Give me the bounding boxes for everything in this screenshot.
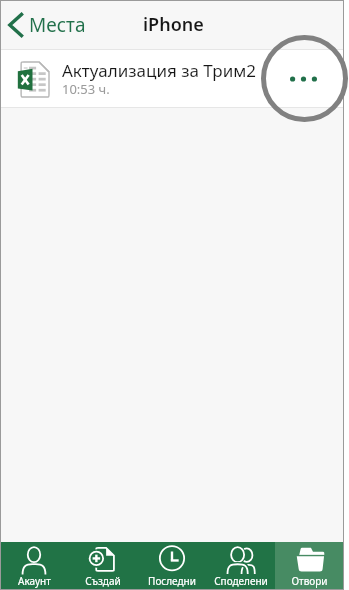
staticText: Последни: [148, 574, 196, 588]
staticText: Създай: [85, 574, 121, 588]
staticText: Места: [29, 12, 86, 38]
staticText: Отвори: [291, 574, 328, 588]
button[interactable]: More options: [284, 60, 322, 98]
staticText: Акаунт: [18, 574, 51, 588]
staticText: Актуализация за Трим2: [62, 59, 256, 82]
button[interactable]: Създай: [68, 542, 137, 590]
button[interactable]: Отвори: [275, 542, 344, 590]
button[interactable]: Споделени: [206, 542, 275, 590]
button[interactable]: Места: [8, 0, 86, 49]
staticText: iPhone: [143, 12, 204, 37]
staticText: 10:53 ч.: [62, 80, 110, 98]
button[interactable]: Последни: [137, 542, 206, 590]
button[interactable]: Актуализация за Трим2: [0, 50, 344, 108]
button[interactable]: Акаунт: [0, 542, 68, 590]
staticText: Споделени: [214, 574, 268, 588]
